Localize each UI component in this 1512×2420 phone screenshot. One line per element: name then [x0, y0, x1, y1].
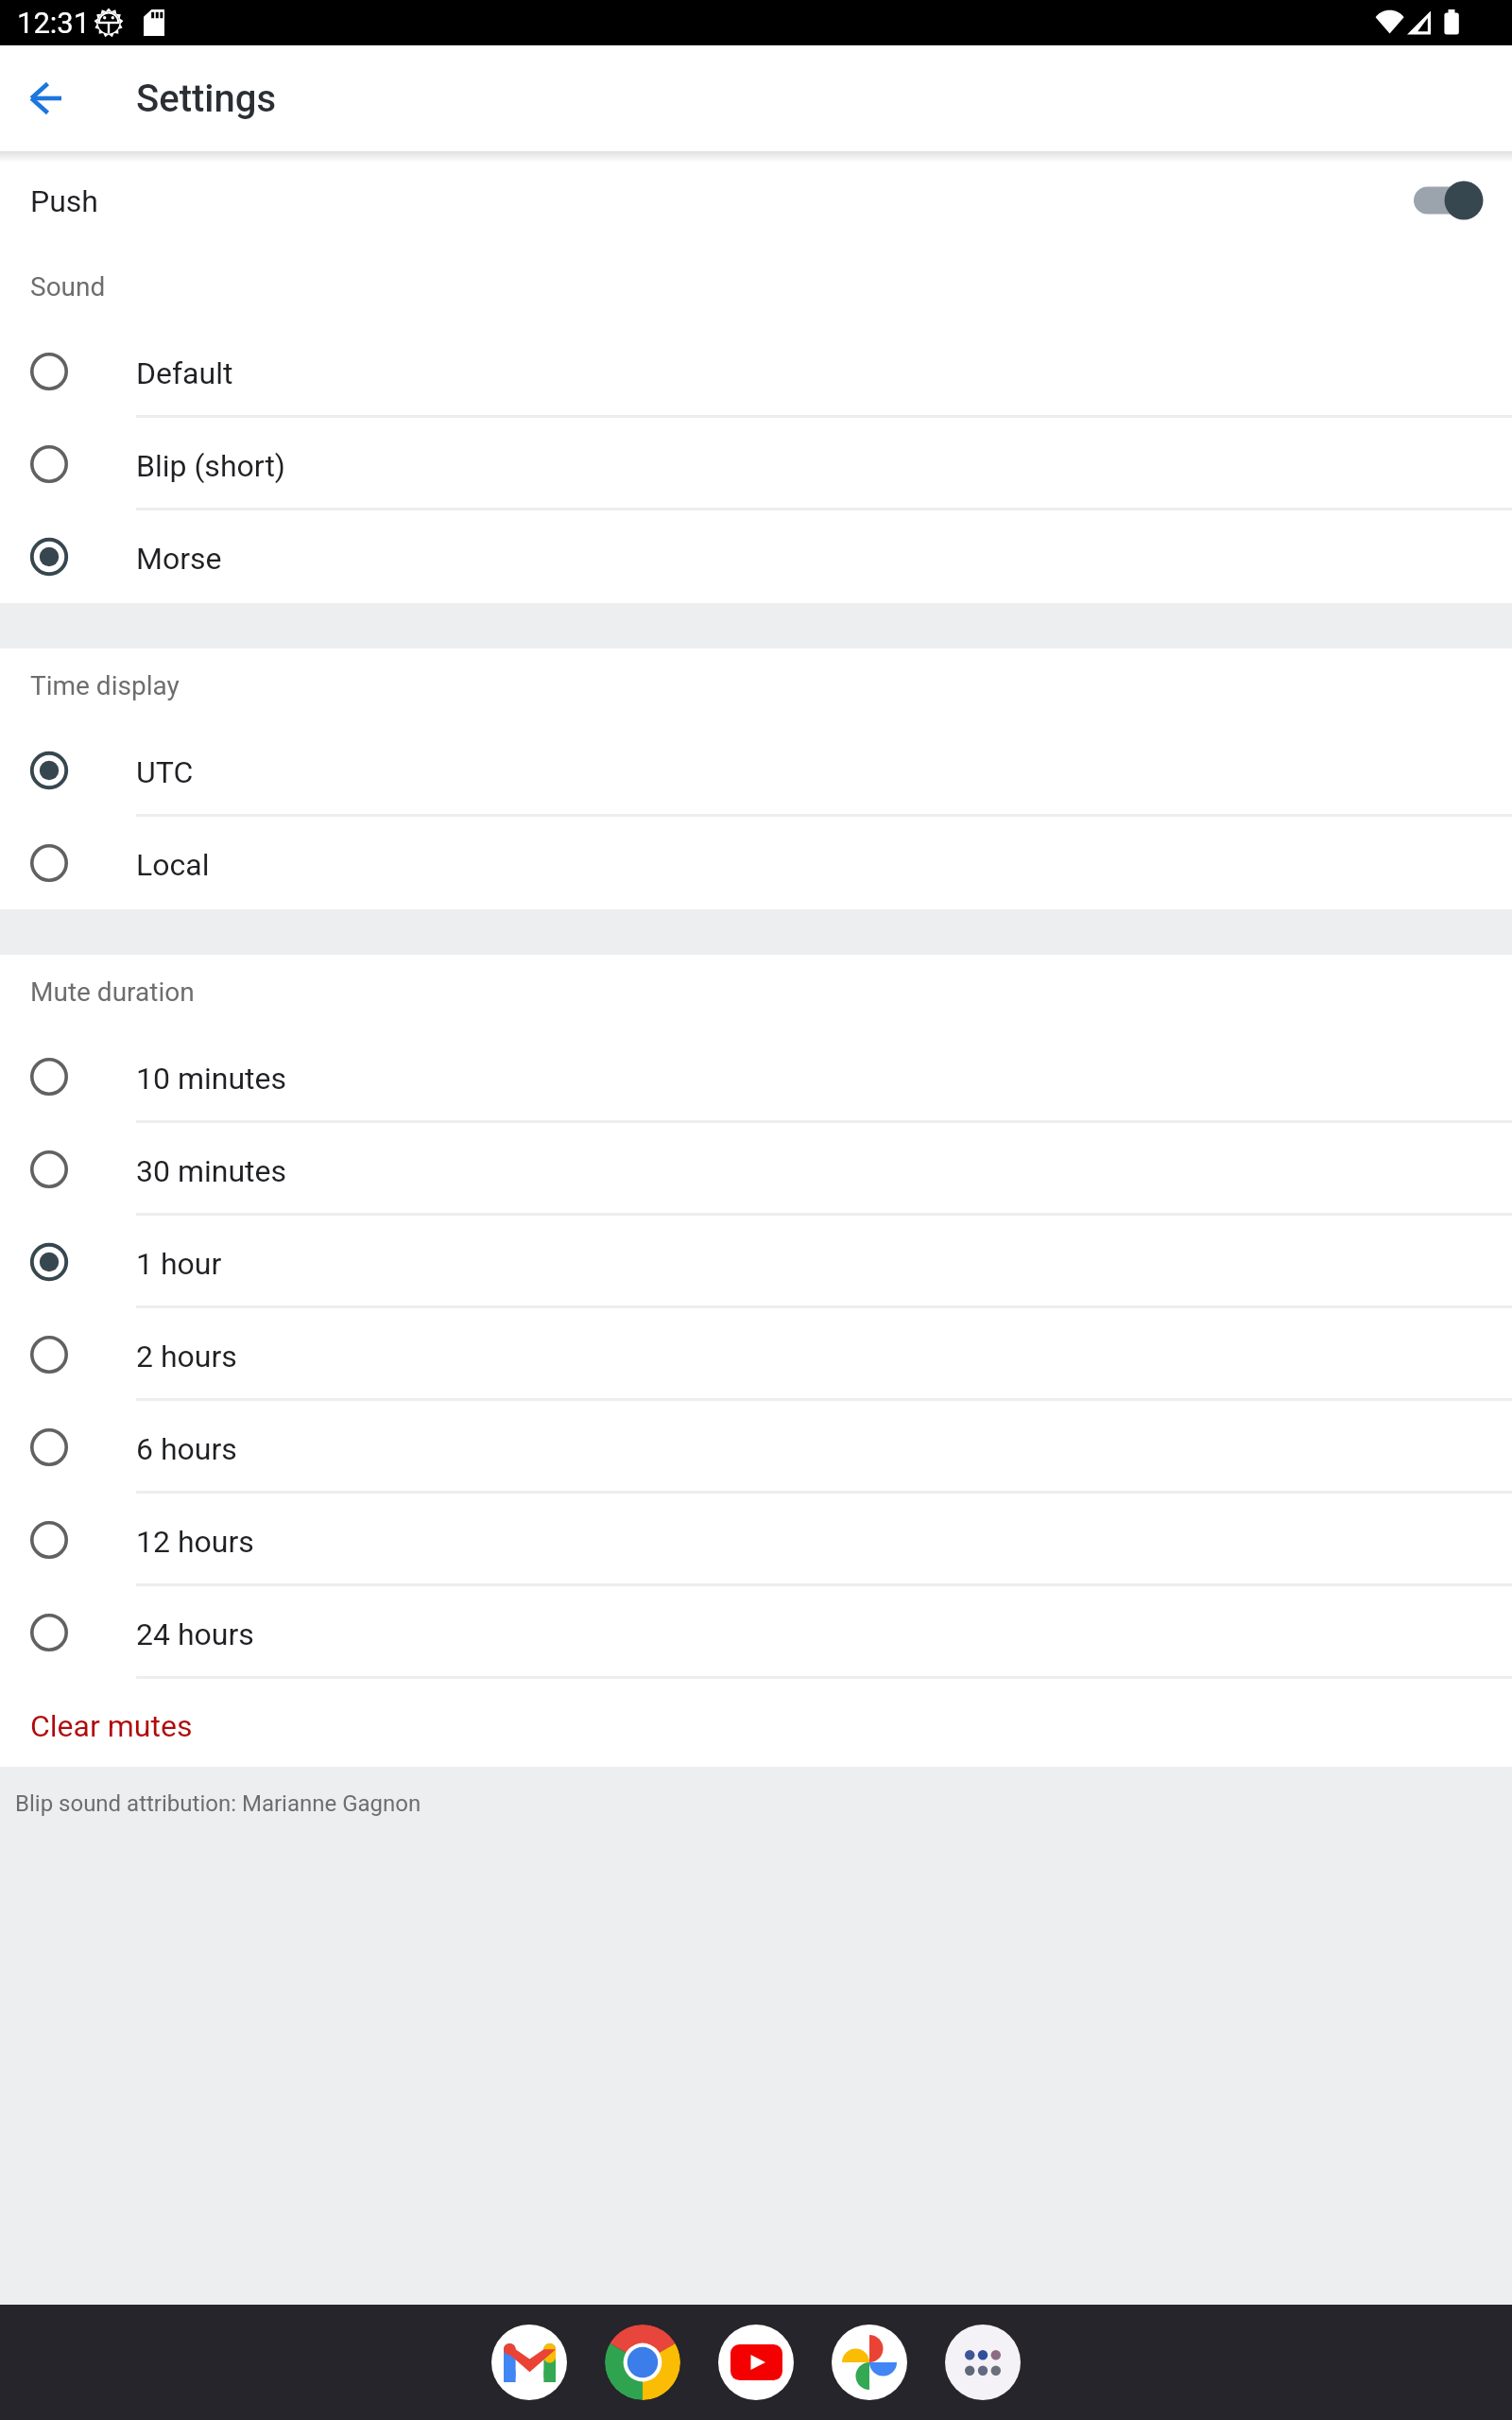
button[interactable]: Back [15, 68, 76, 129]
staticText: 12:31 [17, 6, 91, 40]
staticText: 10 minutes [136, 1061, 287, 1097]
staticText: Default [136, 355, 233, 391]
button[interactable]: Default [0, 325, 1512, 418]
button[interactable]: 10 minutes [0, 1030, 1512, 1123]
button[interactable]: 6 hours [0, 1401, 1512, 1494]
staticText: Clear mutes [30, 1708, 193, 1744]
staticText: Local [136, 847, 210, 883]
button[interactable]: Blip (short) [0, 418, 1512, 510]
button[interactable]: 30 minutes [0, 1123, 1512, 1216]
staticText: 6 hours [136, 1431, 237, 1467]
staticText: UTC [136, 754, 194, 790]
button[interactable]: UTC [0, 724, 1512, 817]
button[interactable]: Push [0, 151, 1512, 250]
staticText: Blip sound attribution: Marianne Gagnon [15, 1790, 421, 1817]
staticText: Mute duration [30, 977, 195, 1008]
button[interactable]: Morse [0, 510, 1512, 603]
button[interactable]: Chrome [605, 2325, 680, 2400]
button[interactable]: 1 hour [0, 1216, 1512, 1308]
staticText: Settings [136, 77, 277, 121]
button[interactable]: 2 hours [0, 1308, 1512, 1401]
staticText: 12 hours [136, 1524, 254, 1560]
staticText: 24 hours [136, 1616, 254, 1652]
button[interactable]: Gmail [491, 2325, 567, 2400]
button[interactable]: YouTube [718, 2325, 794, 2400]
button[interactable]: All apps [945, 2325, 1021, 2400]
staticText: 30 minutes [136, 1153, 287, 1189]
staticText: Morse [136, 541, 222, 577]
button[interactable]: Push notifications toggle [1412, 180, 1484, 221]
staticText: Push [30, 183, 98, 219]
staticText: Sound [30, 271, 106, 302]
button[interactable]: 24 hours [0, 1586, 1512, 1679]
button[interactable]: Local [0, 817, 1512, 909]
staticText: Blip (short) [136, 448, 285, 484]
staticText: 1 hour [136, 1246, 222, 1282]
button[interactable]: Photos [832, 2325, 907, 2400]
button[interactable]: Clear mutes [0, 1679, 1512, 1767]
staticText: Time display [30, 670, 180, 701]
staticText: 2 hours [136, 1339, 237, 1374]
button[interactable]: 12 hours [0, 1494, 1512, 1586]
